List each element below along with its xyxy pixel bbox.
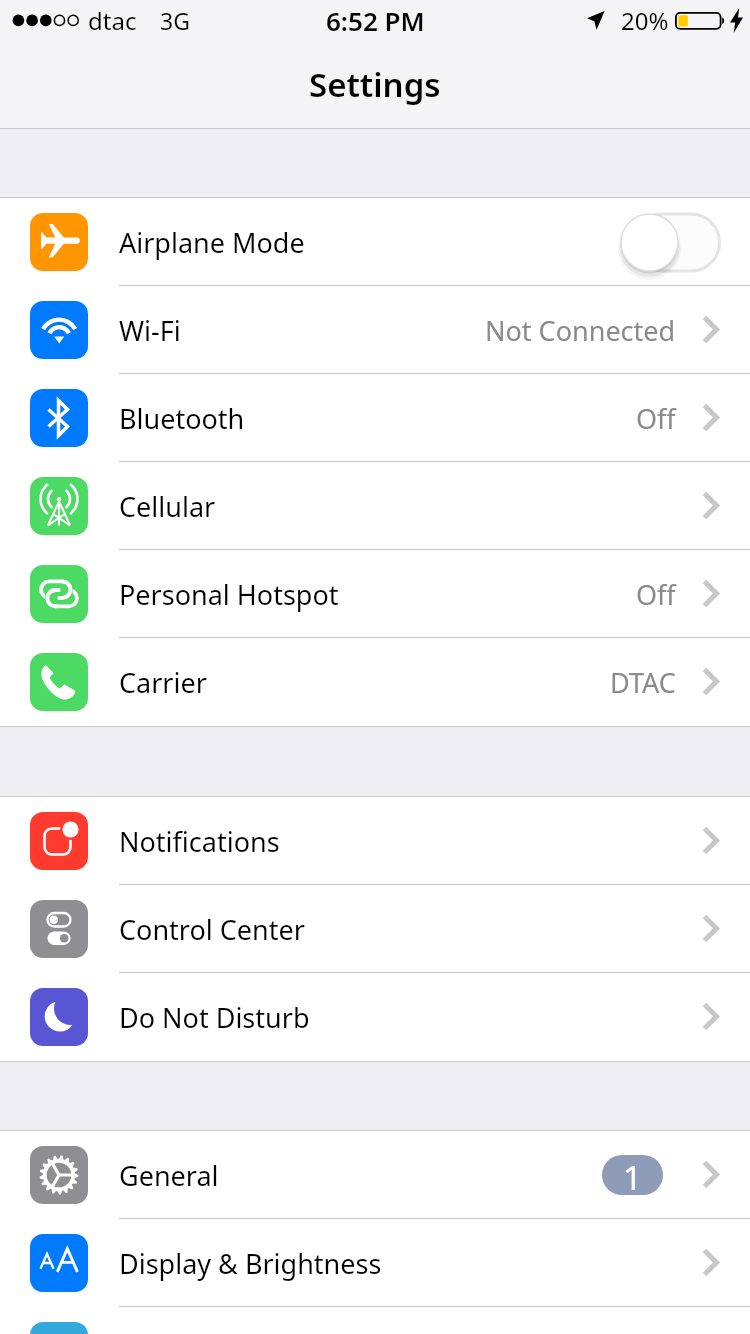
staticText: Personal Hotspot <box>119 576 339 613</box>
button[interactable]: Personal Hotspot <box>0 550 750 638</box>
staticText: Settings <box>309 62 441 107</box>
button[interactable]: Airplane Mode <box>0 198 750 286</box>
button[interactable]: Airplane Mode toggle <box>620 209 721 275</box>
staticText: General <box>119 1157 219 1194</box>
staticText: Bluetooth <box>119 400 245 437</box>
button[interactable]: Do Not Disturb <box>0 973 750 1061</box>
staticText: 6:52 PM <box>326 3 425 38</box>
staticText: Carrier <box>119 664 207 701</box>
button[interactable]: Bluetooth <box>0 374 750 462</box>
staticText: 3G <box>160 5 190 36</box>
staticText: Display & Brightness <box>119 1245 382 1282</box>
staticText: dtac <box>88 4 137 37</box>
button[interactable]: General <box>0 1131 750 1219</box>
button[interactable]: Cellular <box>0 462 750 550</box>
staticText: 20% <box>621 4 669 37</box>
button[interactable]: Wallpaper <box>0 1307 750 1334</box>
button[interactable]: Wi-Fi <box>0 286 750 374</box>
staticText: DTAC <box>610 664 676 701</box>
staticText: Control Center <box>119 911 305 948</box>
staticText: Not Connected <box>485 312 676 349</box>
button[interactable]: Carrier <box>0 638 750 726</box>
staticText: Cellular <box>119 488 216 525</box>
staticText: Airplane Mode <box>119 224 305 261</box>
staticText: Do Not Disturb <box>119 999 310 1036</box>
staticText: Notifications <box>119 823 280 860</box>
staticText: Off <box>636 400 676 437</box>
staticText: 1 <box>623 1155 642 1195</box>
staticText: Off <box>636 576 676 613</box>
button[interactable]: Display & Brightness <box>0 1219 750 1307</box>
staticText: Wi-Fi <box>119 312 181 349</box>
button[interactable]: Notifications <box>0 797 750 885</box>
button[interactable]: Control Center <box>0 885 750 973</box>
